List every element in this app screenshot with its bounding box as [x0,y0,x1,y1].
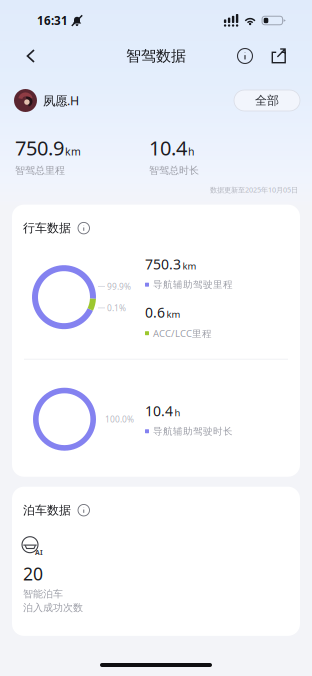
button[interactable]: 说明 [232,43,258,69]
staticText: 夙愿.H [43,92,79,109]
staticText: km [65,144,81,158]
staticText: km [166,308,180,320]
button[interactable]: 分享 [266,43,292,69]
staticText: 导航辅助驾驶里程 [153,279,233,291]
staticText: 智驾数据 [126,47,186,65]
staticText: 泊入成功次数 [23,601,83,614]
staticText: 16:31 [37,13,68,28]
staticText: 10.4 [149,134,187,161]
staticText: 智驾总里程 [15,164,65,177]
staticText: 20 [23,562,43,586]
button[interactable]: 全部 [234,90,300,111]
staticText: 行车数据 [23,221,71,236]
staticText: 10.4 [145,401,173,420]
staticText: 750.3 [145,255,181,274]
button[interactable]: 返回 [17,42,45,70]
staticText: 100.0% [105,413,134,425]
staticText: h [188,144,194,158]
staticText: 数据更新至2025年10月05日 [210,185,298,195]
staticText: 智驾总时长 [149,164,199,177]
staticText: 750.9 [15,134,64,161]
staticText: h [174,406,180,419]
staticText: 导航辅助驾驶时长 [153,425,233,437]
staticText: 智能泊车 [23,588,63,600]
staticText: km [182,260,196,272]
staticText: ACC/LCC里程 [153,327,212,340]
staticText: 泊车数据 [23,503,71,518]
staticText: 全部 [255,93,279,108]
staticText: AI [35,548,43,557]
staticText: 0.1% [107,302,126,314]
staticText: 99.9% [107,281,131,292]
staticText: 0.6 [145,303,165,322]
